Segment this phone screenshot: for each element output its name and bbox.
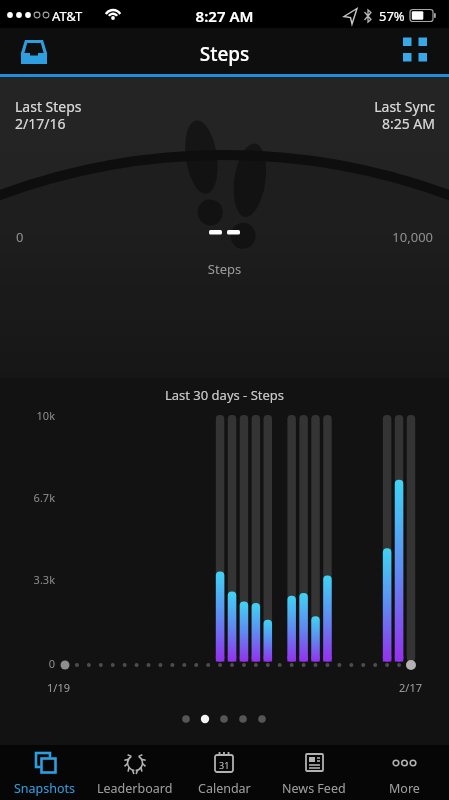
- button[interactable]: Snapshots: [0, 745, 90, 800]
- staticText: 6.7k: [0, 490, 55, 505]
- staticText: 8:25 AM: [0, 114, 435, 133]
- staticText: 2/17: [399, 680, 422, 695]
- staticText: Steps: [0, 41, 449, 67]
- button[interactable]: [14, 34, 54, 74]
- staticText: Last Sync: [0, 97, 435, 116]
- staticText: 10,000: [0, 228, 433, 246]
- button[interactable]: News Feed: [269, 745, 359, 800]
- staticText: News Feed: [282, 780, 346, 797]
- staticText: 2/17/16: [15, 114, 66, 133]
- button[interactable]: 31: [179, 745, 269, 800]
- staticText: Steps: [0, 260, 449, 278]
- staticText: 0: [0, 656, 55, 671]
- staticText: Calendar: [198, 780, 251, 797]
- button[interactable]: [396, 36, 432, 72]
- staticText: AT&T: [52, 7, 83, 25]
- button[interactable]: More: [359, 745, 449, 800]
- staticText: 3.3k: [0, 572, 55, 587]
- staticText: More: [389, 780, 420, 797]
- staticText: Snapshots: [14, 780, 76, 797]
- staticText: 1/19: [47, 680, 70, 695]
- staticText: 0: [16, 228, 24, 246]
- button[interactable]: Leaderboard: [90, 745, 179, 800]
- staticText: 57%: [379, 7, 405, 25]
- staticText: 8:27 AM: [0, 6, 449, 26]
- staticText: Last 30 days - Steps: [0, 386, 449, 404]
- staticText: 10k: [0, 408, 55, 423]
- staticText: Last Steps: [15, 97, 82, 116]
- staticText: Leaderboard: [97, 780, 173, 797]
- staticText: 31: [219, 759, 230, 771]
